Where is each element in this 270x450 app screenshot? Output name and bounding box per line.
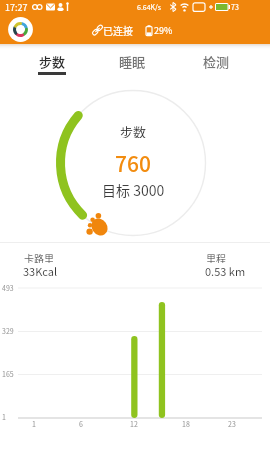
staticText: 1 [2,412,6,422]
staticText: 493 [2,283,14,293]
staticText: 1 [32,419,36,429]
staticText: 760 [115,148,151,172]
staticText: 里程 [206,251,226,263]
staticText: 目标 3000 [102,180,165,198]
staticText: 29% [154,24,173,37]
staticText: 17:27 [5,1,28,14]
button[interactable]: 检测 [186,49,246,73]
staticText: 73 [231,2,239,12]
staticText: 睡眠 [119,52,146,71]
button[interactable]: 已连接 [92,22,138,38]
button[interactable] [8,17,33,42]
staticText: 23 [228,419,236,429]
staticText: 步数 [39,52,66,71]
staticText: 检测 [203,52,230,71]
staticText: 卡路里 [24,251,54,263]
staticText: 0.53 km [205,263,246,276]
staticText: 12 [130,419,138,429]
staticText: 329 [2,326,14,336]
staticText: 已连接 [103,23,133,37]
staticText: 6.64K/s [137,2,162,12]
staticText: 18 [182,419,190,429]
staticText: 33Kcal [23,263,58,276]
staticText: 165 [2,369,14,379]
button[interactable]: 睡眠 [102,49,162,73]
staticText: 6 [79,419,83,429]
button[interactable]: 步数 [22,49,82,73]
staticText: 步数 [120,122,147,138]
